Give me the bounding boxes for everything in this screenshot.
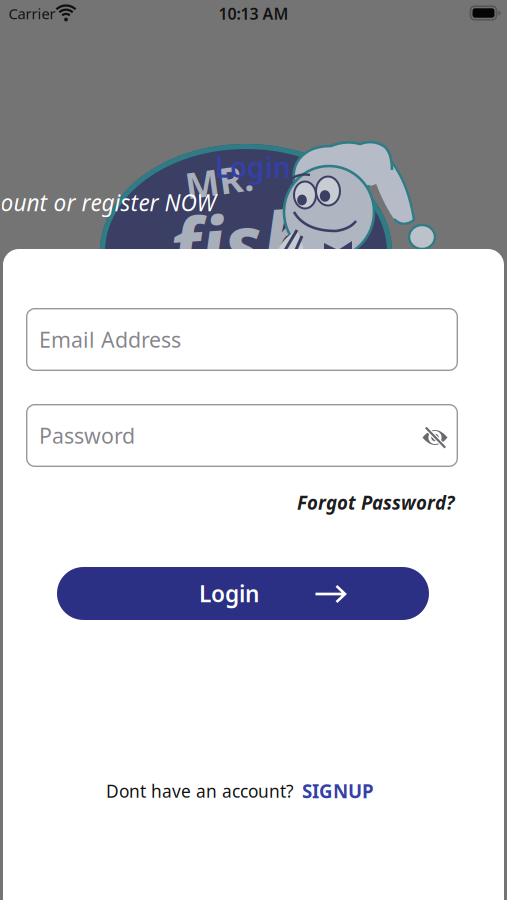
- staticText: Dont have an account?: [106, 779, 294, 802]
- staticText: MR.: [185, 157, 253, 205]
- button[interactable]: Show password: [422, 425, 448, 449]
- staticText: 10:13 AM: [218, 3, 288, 24]
- staticText: SIGNUP: [302, 779, 374, 803]
- staticText: Email Address: [39, 325, 181, 354]
- button[interactable]: Email Address: [26, 308, 458, 371]
- staticText: Forgot Password?: [297, 490, 455, 515]
- staticText: Password: [39, 421, 135, 450]
- staticText: ount or register NOW: [0, 187, 215, 217]
- staticText: fish: [170, 189, 310, 295]
- button[interactable]: Login: [57, 567, 429, 620]
- staticText: Carrier: [8, 4, 55, 23]
- staticText: Login: [199, 578, 259, 608]
- staticText: Login: [215, 148, 291, 186]
- button[interactable]: SIGNUP: [302, 779, 374, 803]
- button[interactable]: Forgot Password?: [297, 490, 455, 515]
- button[interactable]: Password: [26, 404, 458, 467]
